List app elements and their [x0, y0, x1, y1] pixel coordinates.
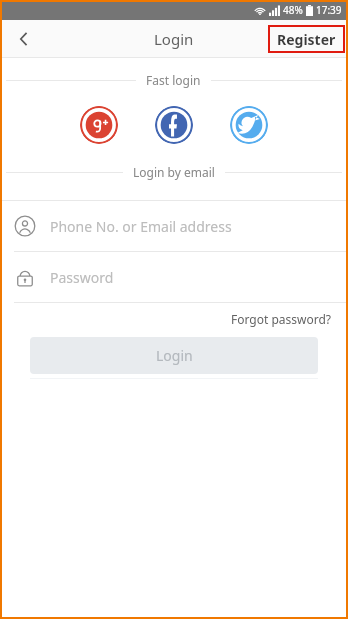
- staticText: Login: [156, 346, 193, 365]
- staticText: Login: [154, 29, 194, 49]
- button[interactable]: Back: [8, 23, 40, 55]
- button[interactable]: Password: [0, 252, 348, 302]
- staticText: Register: [277, 30, 336, 49]
- button[interactable]: Phone No. or Email address: [0, 201, 348, 251]
- button[interactable]: Sign in with Twitter: [230, 106, 268, 144]
- staticText: Login by email: [133, 164, 215, 180]
- staticText: Password: [50, 268, 114, 287]
- button[interactable]: Login: [30, 337, 318, 374]
- button[interactable]: Sign in with Facebook: [155, 106, 193, 144]
- staticText: Fast login: [146, 72, 201, 88]
- staticText: Forgot password?: [231, 311, 332, 327]
- button[interactable]: Forgot password?: [229, 309, 334, 329]
- staticText: 48%: [283, 3, 303, 17]
- staticText: Phone No. or Email address: [50, 217, 232, 236]
- button[interactable]: Sign in with Google Plus: [80, 106, 118, 144]
- button[interactable]: Register: [268, 25, 345, 53]
- staticText: 17:39: [316, 3, 342, 17]
